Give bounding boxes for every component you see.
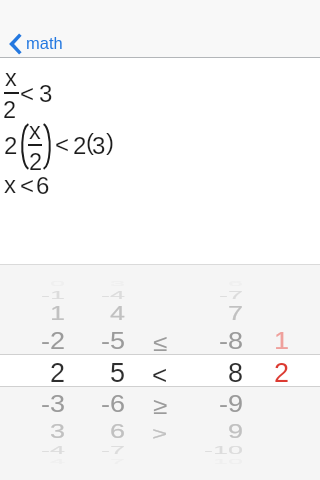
- staticText: >: [152, 423, 168, 443]
- staticText: 2: [50, 358, 66, 388]
- staticText: 3: [92, 132, 106, 159]
- staticText: -4: [41, 444, 66, 456]
- staticText: 3: [39, 80, 53, 107]
- button[interactable]: [208, 265, 253, 480]
- staticText: -3: [41, 390, 66, 417]
- staticText: 8: [228, 358, 244, 388]
- staticText: 6: [36, 172, 50, 199]
- staticText: x: [4, 171, 16, 198]
- button[interactable]: [30, 265, 75, 480]
- staticText: 1: [274, 327, 290, 354]
- staticText: 9: [228, 421, 244, 443]
- button[interactable]: [6, 29, 78, 56]
- staticText: -8: [219, 327, 244, 354]
- staticText: (: [86, 128, 94, 155]
- button[interactable]: [262, 265, 302, 480]
- staticText: 2: [29, 149, 43, 175]
- staticText: ≥: [153, 392, 168, 418]
- button[interactable]: [90, 265, 135, 480]
- staticText: 2: [274, 358, 290, 388]
- staticText: 3: [50, 421, 66, 443]
- staticText: -9: [219, 390, 244, 417]
- staticText: -7: [219, 289, 244, 301]
- staticText: x: [5, 65, 17, 91]
- staticText: 2: [4, 132, 18, 159]
- staticText: 2: [73, 132, 87, 159]
- staticText: <: [55, 131, 70, 158]
- staticText: 2: [3, 97, 17, 123]
- button[interactable]: [140, 265, 180, 480]
- staticText: ≤: [153, 329, 168, 355]
- staticText: 5: [110, 358, 126, 388]
- staticText: -1: [41, 289, 66, 301]
- staticText: 1: [50, 303, 66, 325]
- staticText: -2: [41, 327, 66, 354]
- staticText: x: [29, 118, 41, 144]
- staticText: math: [26, 34, 63, 52]
- staticText: -4: [101, 289, 126, 301]
- staticText: <: [152, 360, 168, 389]
- staticText: 6: [110, 421, 126, 443]
- staticText: -10: [204, 444, 244, 456]
- staticText: -5: [101, 327, 126, 354]
- staticText: 4: [110, 303, 126, 325]
- staticText: -6: [101, 390, 126, 417]
- staticText: -7: [101, 444, 126, 456]
- staticText: <: [20, 172, 35, 199]
- staticText: 7: [228, 303, 244, 325]
- staticText: ): [106, 128, 114, 155]
- staticText: <: [20, 80, 35, 107]
